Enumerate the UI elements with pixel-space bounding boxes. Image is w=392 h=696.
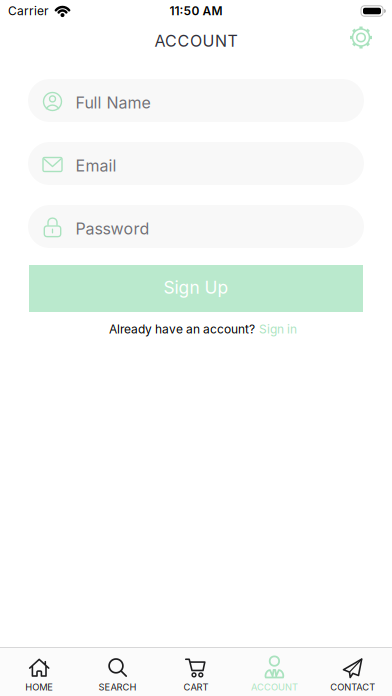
staticText: Email <box>75 156 116 175</box>
button[interactable]: SEARCH <box>78 648 157 696</box>
button[interactable]: ACCOUNT <box>235 648 314 696</box>
button[interactable]: Password <box>28 205 364 248</box>
button[interactable]: Sign in <box>259 322 297 336</box>
button[interactable]: Full Name <box>28 79 364 122</box>
staticText: HOME <box>25 681 53 692</box>
button[interactable]: Sign Up <box>29 265 363 312</box>
staticText: Already have an account? <box>109 322 255 336</box>
button[interactable]: Settings <box>349 25 392 49</box>
staticText: SEARCH <box>99 681 137 692</box>
staticText: Password <box>75 219 149 238</box>
staticText: CONTACT <box>330 681 375 692</box>
staticText: ACCOUNT <box>251 681 298 692</box>
staticText: Full Name <box>75 93 150 112</box>
button[interactable]: Email <box>28 142 364 185</box>
button[interactable]: CONTACT <box>314 648 392 696</box>
staticText: Sign Up <box>163 277 228 298</box>
button[interactable]: HOME <box>0 648 78 696</box>
staticText: 11:50 AM <box>169 4 222 18</box>
staticText: Sign in <box>259 322 297 336</box>
button[interactable]: CART <box>157 648 235 696</box>
staticText: ACCOUNT <box>154 32 237 50</box>
staticText: CART <box>183 681 208 692</box>
staticText: Carrier <box>8 4 49 18</box>
